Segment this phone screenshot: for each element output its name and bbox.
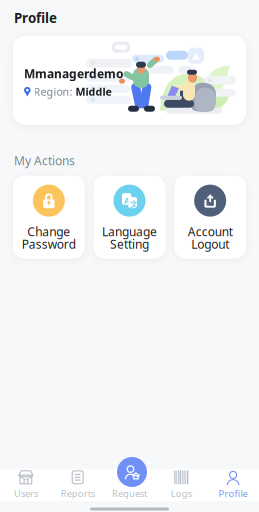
staticText: Users bbox=[14, 487, 38, 500]
staticText: Mmanagerdemo bbox=[24, 66, 124, 82]
staticText: My Actions bbox=[14, 153, 75, 169]
staticText: Reports bbox=[61, 487, 95, 500]
staticText: Request bbox=[112, 487, 147, 500]
staticText: Logs bbox=[171, 487, 192, 500]
staticText: Profile bbox=[219, 487, 248, 500]
staticText: 文 bbox=[130, 199, 138, 209]
staticText: Region: bbox=[34, 85, 73, 99]
staticText: Middle bbox=[76, 85, 112, 99]
staticText: A bbox=[124, 195, 130, 206]
button[interactable]: Profile bbox=[207, 470, 259, 500]
staticText: Language bbox=[102, 224, 157, 239]
button[interactable]: Users bbox=[0, 470, 52, 500]
button[interactable]: Reports bbox=[52, 470, 104, 500]
staticText: Password bbox=[22, 236, 76, 252]
button[interactable]: A bbox=[94, 176, 165, 259]
staticText: Setting bbox=[110, 236, 149, 252]
button[interactable]: Request bbox=[117, 457, 147, 487]
button[interactable]: Logs bbox=[155, 470, 207, 500]
button[interactable]: Account bbox=[174, 176, 246, 259]
staticText: Profile bbox=[14, 9, 57, 27]
staticText: Change bbox=[27, 224, 70, 239]
staticText: Account bbox=[188, 224, 233, 239]
button[interactable]: Request bbox=[104, 470, 155, 500]
staticText: Logout bbox=[191, 236, 229, 252]
button[interactable]: Change bbox=[13, 176, 85, 259]
